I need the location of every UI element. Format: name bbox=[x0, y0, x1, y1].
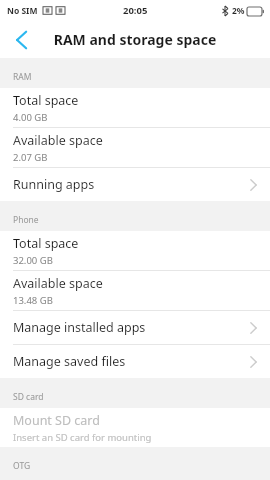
staticText: Available space bbox=[13, 275, 103, 292]
staticText: Total space bbox=[13, 235, 79, 252]
staticText: Phone bbox=[13, 214, 39, 226]
staticText: OTG bbox=[13, 460, 31, 472]
staticText: 32.00 GB bbox=[13, 254, 53, 267]
staticText: Manage saved files bbox=[13, 353, 126, 370]
staticText: Manage installed apps bbox=[13, 319, 146, 336]
staticText: SD card bbox=[13, 391, 44, 403]
staticText: Available space bbox=[13, 132, 103, 149]
staticText: Running apps bbox=[13, 176, 95, 193]
button[interactable]: Total space bbox=[0, 88, 270, 127]
button[interactable]: Manage saved files bbox=[0, 345, 270, 378]
button[interactable]: Running apps bbox=[0, 168, 270, 201]
staticText: Mount SD card bbox=[13, 412, 100, 429]
staticText: No SIM bbox=[7, 5, 38, 17]
staticText: Total space bbox=[13, 92, 79, 109]
staticText: 13.48 GB bbox=[13, 294, 53, 307]
staticText: 2% bbox=[232, 5, 245, 17]
staticText: RAM bbox=[13, 71, 32, 83]
button[interactable]: Available space bbox=[0, 128, 270, 167]
button[interactable]: Back bbox=[0, 21, 42, 58]
staticText: RAM and storage space bbox=[0, 30, 270, 49]
staticText: 20:05 bbox=[123, 4, 148, 17]
button[interactable]: Available space bbox=[0, 271, 270, 310]
staticText: 2.07 GB bbox=[13, 151, 48, 164]
button[interactable]: Total space bbox=[0, 231, 270, 270]
staticText: Insert an SD card for mounting bbox=[13, 431, 152, 444]
staticText: 4.00 GB bbox=[13, 111, 48, 124]
button[interactable]: Manage installed apps bbox=[0, 311, 270, 344]
